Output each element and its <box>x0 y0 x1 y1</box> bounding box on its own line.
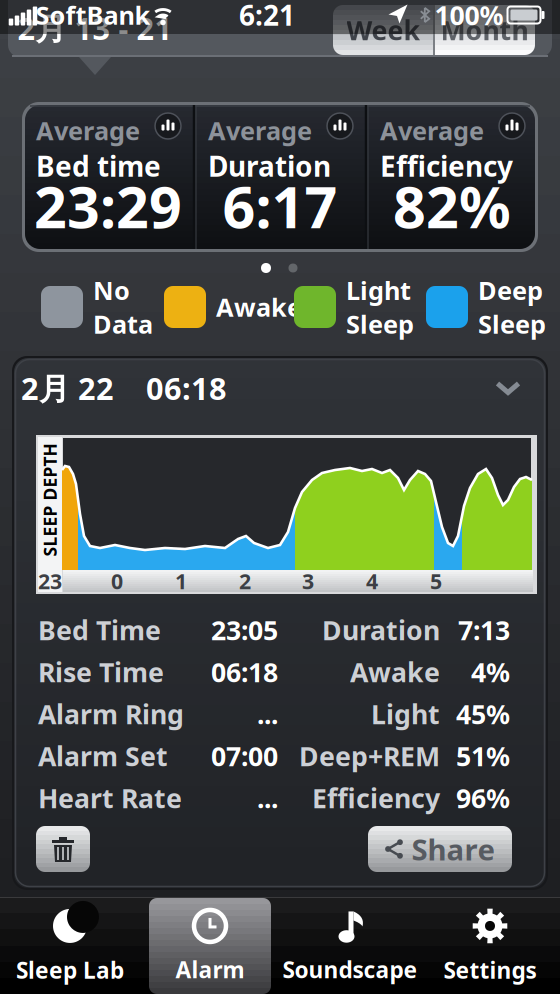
staticText: SLEEP DEPTH <box>0 488 106 511</box>
button[interactable]: Sleep Lab <box>0 899 140 994</box>
button[interactable]: Delete <box>36 826 90 872</box>
staticText: Data <box>93 307 153 341</box>
staticText: 23:05 <box>211 612 278 648</box>
staticText: Average <box>36 114 140 147</box>
staticText: Heart Rate <box>38 780 182 816</box>
staticText: Sleep Lab <box>16 955 124 985</box>
staticText: 5 <box>430 567 442 595</box>
staticText: Rise Time <box>38 654 164 690</box>
staticText: 100% <box>434 0 503 33</box>
staticText: Alarm <box>175 954 244 984</box>
staticText: 51% <box>456 738 510 774</box>
staticText: Settings <box>443 955 536 985</box>
staticText: 1 <box>175 567 187 595</box>
staticText: Deep <box>478 273 543 307</box>
staticText: Share <box>411 829 495 868</box>
button[interactable]: Alarm <box>140 899 280 994</box>
staticText: No <box>93 273 130 307</box>
staticText: 45% <box>456 696 510 732</box>
staticText: Light <box>346 273 411 307</box>
staticText: 23 <box>38 567 62 595</box>
staticText: 0 <box>111 567 123 595</box>
staticText: 23:29 <box>34 168 182 244</box>
staticText: Sleep <box>478 307 546 341</box>
staticText: 2 <box>239 567 251 595</box>
staticText: 7:13 <box>458 612 510 648</box>
staticText: Bed time <box>36 147 161 184</box>
staticText: ... <box>257 696 278 732</box>
staticText: Awake <box>350 654 440 690</box>
staticText: 82% <box>393 168 511 244</box>
staticText: Sleep <box>346 307 414 341</box>
staticText: 2月 13 - 21 <box>17 8 172 48</box>
staticText: SoftBank <box>35 0 150 32</box>
staticText: 6:21 <box>239 0 295 34</box>
staticText: 3 <box>302 567 314 595</box>
staticText: Soundscape <box>282 954 417 984</box>
staticText: Average <box>208 114 312 147</box>
staticText: Awake <box>216 290 302 324</box>
button[interactable]: Week <box>333 5 434 55</box>
staticText: Alarm Ring <box>38 696 184 732</box>
staticText: 96% <box>456 780 510 816</box>
staticText: Duration <box>208 147 331 184</box>
button[interactable]: Soundscape <box>280 899 420 994</box>
staticText: Average <box>380 114 484 147</box>
staticText: 2月 22 06:18 <box>21 368 227 408</box>
staticText: Efficiency <box>380 147 513 184</box>
staticText: Week <box>346 12 420 48</box>
staticText: 4 <box>366 567 378 595</box>
staticText: ... <box>257 780 278 816</box>
staticText: 06:18 <box>211 654 278 690</box>
staticText: 6:17 <box>222 168 337 244</box>
staticText: Bed Time <box>38 612 161 648</box>
staticText: 07:00 <box>211 738 278 774</box>
staticText: Month <box>440 12 528 48</box>
staticText: Alarm Set <box>38 738 168 774</box>
staticText: Efficiency <box>312 780 440 816</box>
staticText: Duration <box>322 612 440 648</box>
button[interactable]: Month <box>434 5 535 55</box>
button[interactable]: Collapse <box>14 358 546 418</box>
staticText: Deep+REM <box>299 738 440 774</box>
staticText: 4% <box>471 654 510 690</box>
staticText: Light <box>371 696 440 732</box>
button[interactable]: Share <box>368 826 512 872</box>
button[interactable]: Settings <box>420 899 560 994</box>
